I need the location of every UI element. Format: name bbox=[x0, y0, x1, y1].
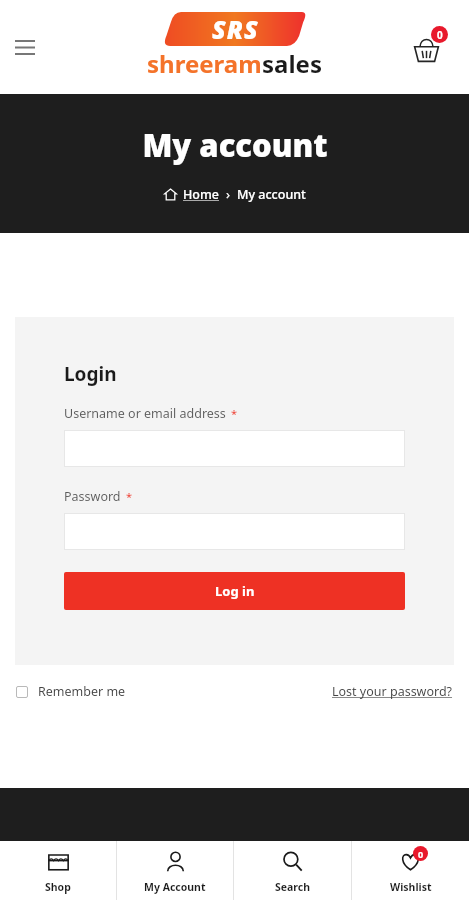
button[interactable]: 0 bbox=[352, 841, 469, 900]
staticText: Remember me bbox=[38, 683, 126, 700]
staticText: Log in bbox=[215, 582, 255, 600]
staticText: Username or email address bbox=[64, 405, 226, 422]
staticText: * bbox=[231, 406, 238, 421]
staticText: 0 bbox=[418, 848, 424, 860]
button[interactable]: Shreeram Sales home bbox=[147, 12, 322, 80]
button[interactable]: Log in bbox=[64, 572, 405, 610]
staticText: My account bbox=[142, 124, 328, 166]
staticText: SRS bbox=[212, 12, 259, 46]
staticText: Password bbox=[64, 488, 121, 505]
button[interactable] bbox=[64, 430, 405, 467]
staticText: 0 bbox=[437, 28, 443, 42]
staticText: Search bbox=[275, 880, 311, 894]
staticText: Shop bbox=[45, 880, 71, 894]
button[interactable]: Home bbox=[183, 186, 220, 203]
button[interactable]: Menu bbox=[8, 30, 42, 64]
button[interactable]: My Account bbox=[117, 841, 233, 900]
staticText: sales bbox=[262, 47, 322, 80]
staticText: My Account bbox=[144, 880, 206, 894]
button[interactable]: Cart, 0 items bbox=[402, 21, 450, 69]
staticText: Lost your password? bbox=[332, 683, 453, 700]
staticText: › bbox=[226, 185, 231, 203]
staticText: My account bbox=[237, 186, 306, 203]
staticText: * bbox=[126, 489, 133, 504]
button[interactable]: Search bbox=[234, 841, 351, 900]
button[interactable]: Remember me bbox=[16, 683, 126, 700]
staticText: Home bbox=[183, 186, 220, 203]
button[interactable]: Shop bbox=[0, 841, 116, 900]
button[interactable]: Lost your password? bbox=[332, 683, 453, 700]
button[interactable] bbox=[64, 513, 405, 550]
staticText: Wishlist bbox=[390, 880, 432, 894]
staticText: shreeram bbox=[147, 47, 262, 80]
staticText: Login bbox=[64, 361, 117, 387]
